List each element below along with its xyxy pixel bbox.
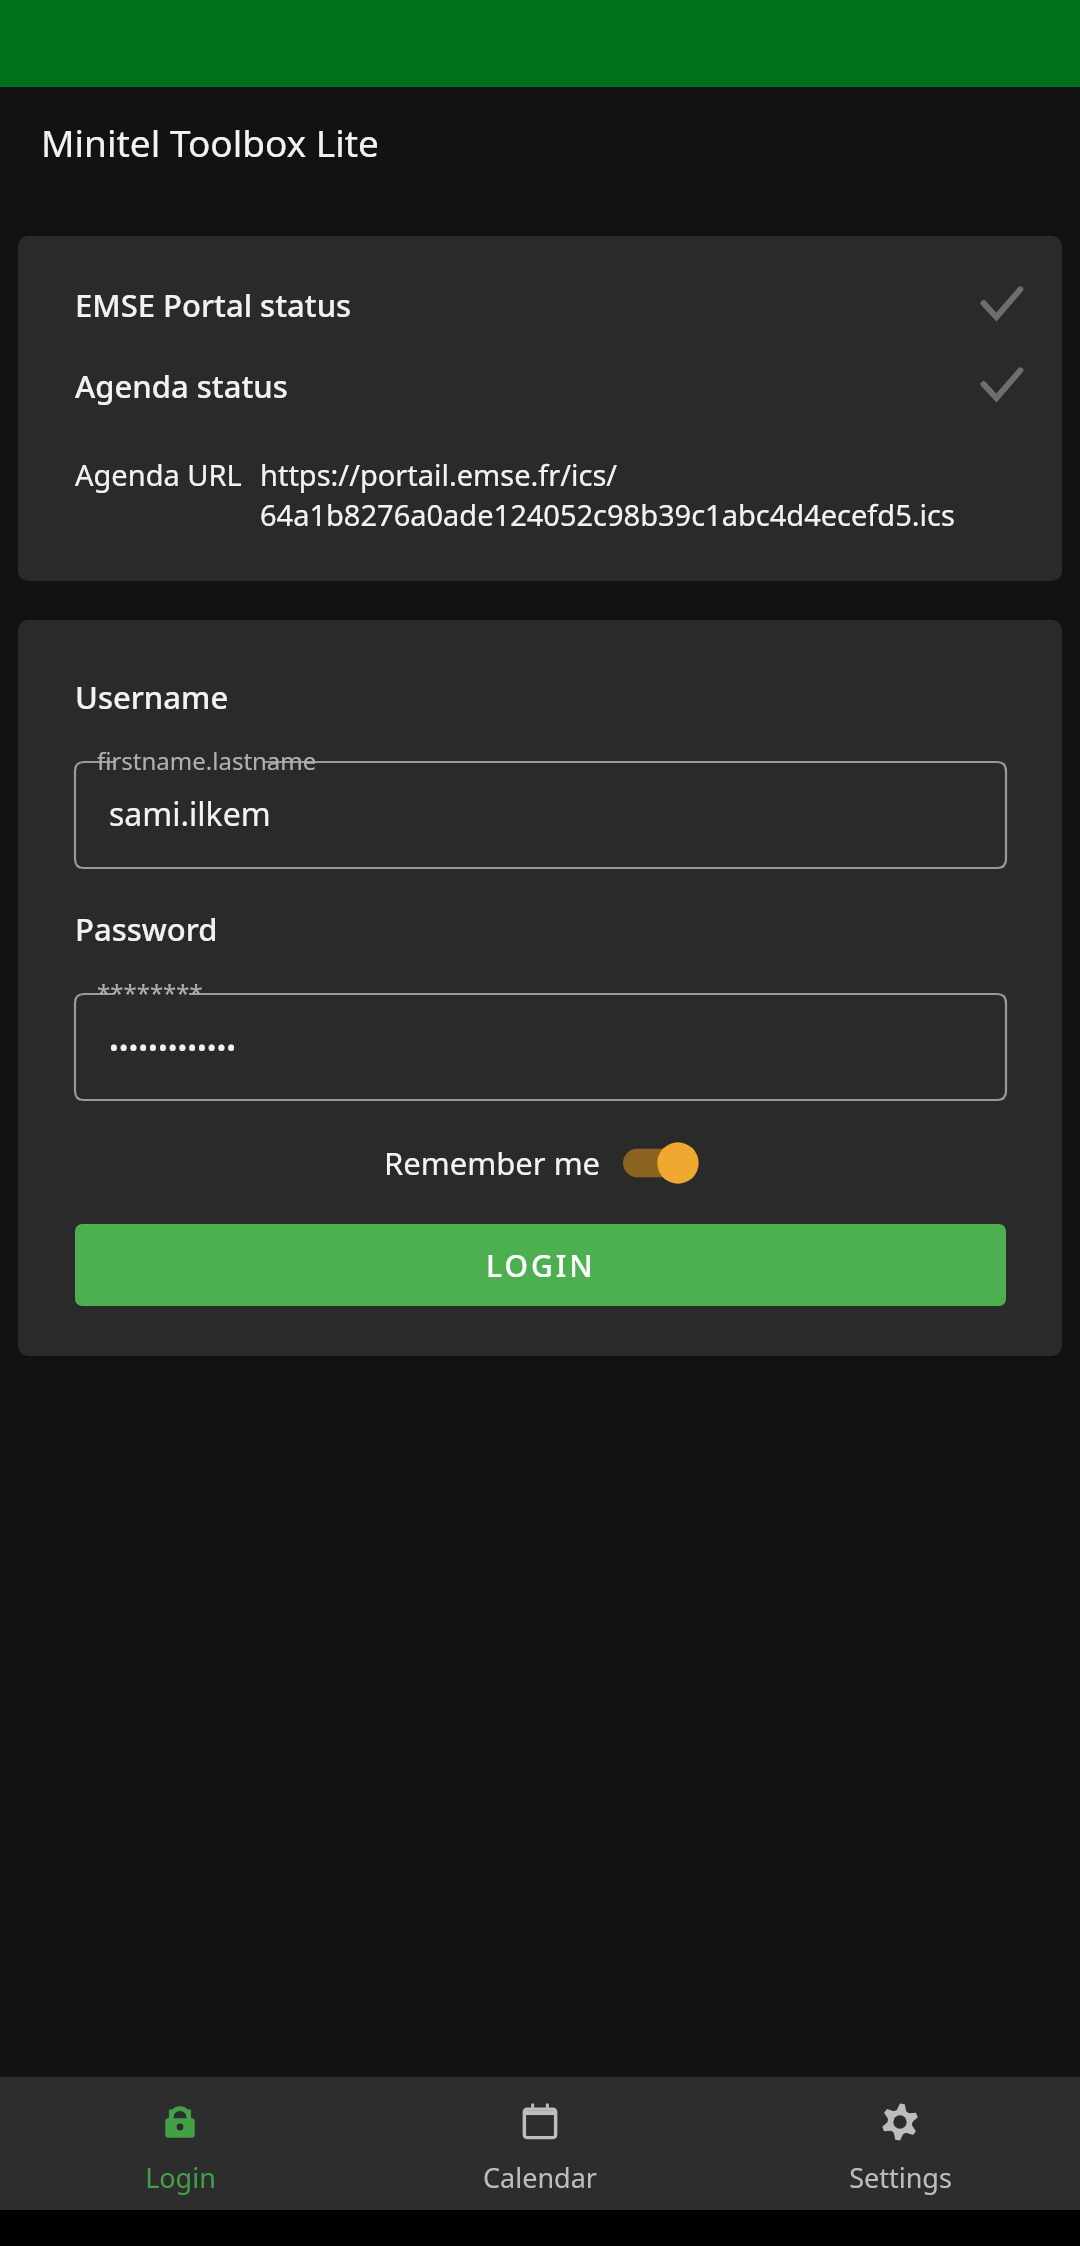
button[interactable]: Calendar <box>360 2077 720 2196</box>
staticText: Remember me <box>384 1142 601 1184</box>
button[interactable]: Settings <box>720 2077 1080 2196</box>
button[interactable]: Remember me <box>378 1134 703 1192</box>
staticText: sami.ilkem <box>109 792 271 836</box>
staticText: Calendar <box>483 2159 597 2196</box>
staticText: https://portail.emse.fr/ics/64a1b8276a0a… <box>260 455 1024 535</box>
staticText: Login <box>145 2159 216 2196</box>
staticText: ******** <box>97 976 203 1009</box>
button[interactable]: Remember me toggle <box>623 1140 697 1186</box>
other: Calendar <box>517 2099 563 2145</box>
button[interactable]: ******** <box>75 976 1006 1100</box>
staticText: LOGIN <box>486 1245 596 1286</box>
button[interactable]: LOGIN <box>75 1224 1006 1306</box>
staticText: Minitel Toolbox Lite <box>41 117 379 167</box>
other: Login <box>157 2099 203 2145</box>
staticText: firstname.lastname <box>97 744 317 777</box>
staticText: Agenda status <box>75 365 978 407</box>
staticText: ••••••••••••• <box>109 1029 237 1064</box>
staticText: Username <box>75 676 229 718</box>
staticText: EMSE Portal status <box>75 284 978 326</box>
staticText: Settings <box>849 2159 952 2196</box>
staticText: Password <box>75 908 218 950</box>
button[interactable]: Login <box>0 2077 360 2196</box>
button[interactable]: firstname.lastname <box>75 744 1006 868</box>
other: Settings <box>877 2099 923 2145</box>
staticText: Agenda URL <box>75 455 242 494</box>
